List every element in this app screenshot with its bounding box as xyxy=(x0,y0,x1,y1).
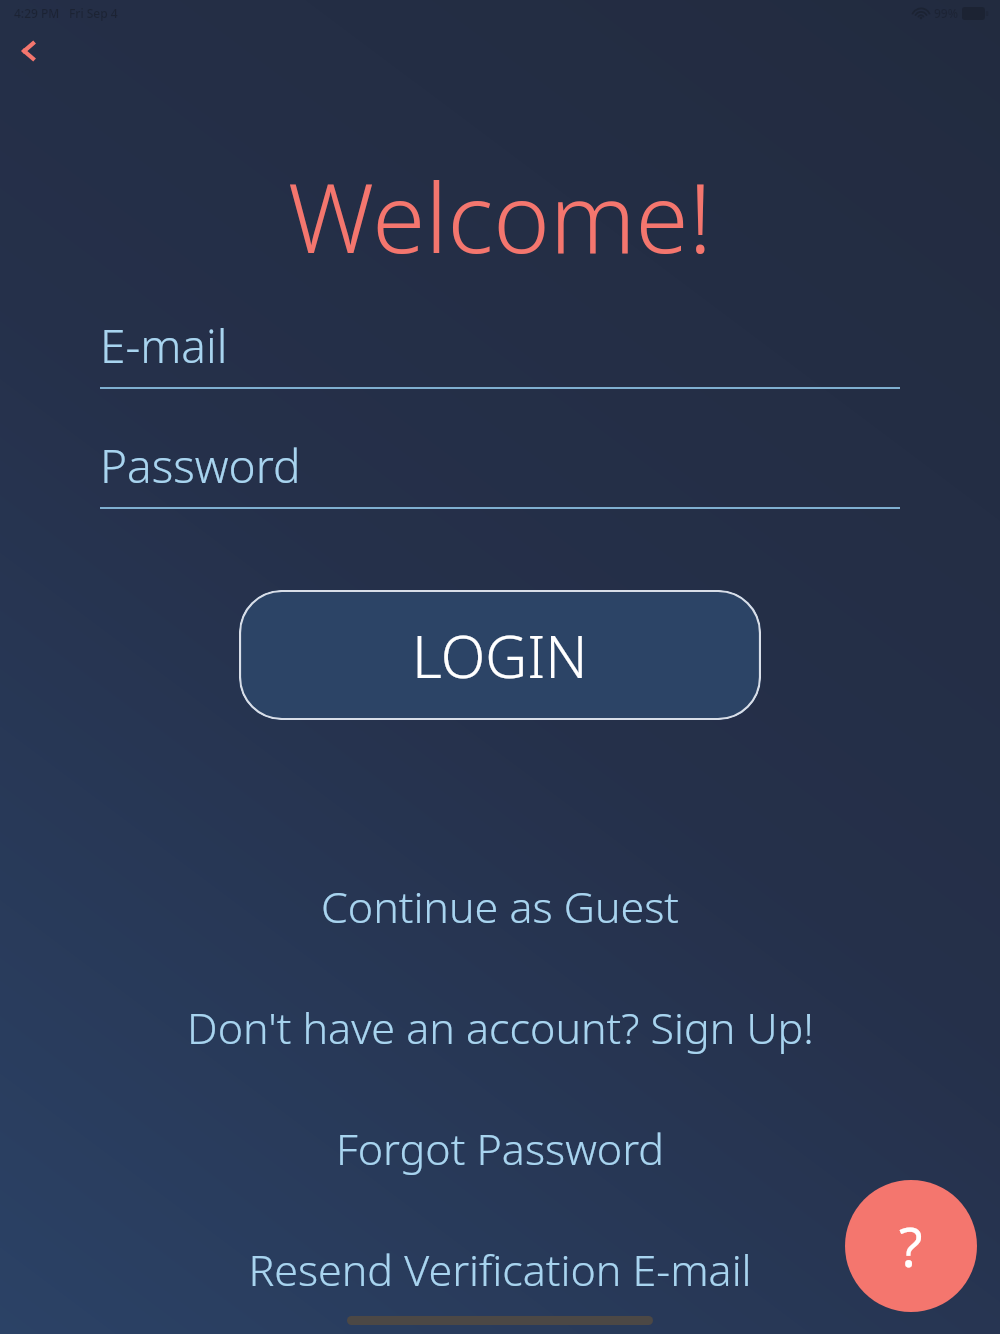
staticText: Fri Sep 4 xyxy=(69,5,118,21)
button[interactable]: Help xyxy=(845,1180,977,1312)
button[interactable]: Password xyxy=(100,434,900,509)
staticText: 4:29 PM xyxy=(14,5,60,21)
button[interactable]: Don't have an account? Sign Up! xyxy=(0,998,1000,1057)
staticText: E-mail xyxy=(100,314,228,377)
staticText: ? xyxy=(899,1209,923,1283)
button[interactable]: E-mail xyxy=(100,314,900,389)
button[interactable]: Resend Verification E-mail xyxy=(0,1240,1000,1299)
staticText: Password xyxy=(100,434,301,497)
staticText: Don't have an account? Sign Up! xyxy=(187,998,814,1057)
button[interactable]: Back xyxy=(8,30,50,72)
staticText: Welcome! xyxy=(0,150,1000,281)
staticText: LOGIN xyxy=(412,616,588,695)
staticText: Continue as Guest xyxy=(321,877,679,936)
button[interactable]: Forgot Password xyxy=(0,1119,1000,1178)
button[interactable]: LOGIN xyxy=(239,590,761,720)
button[interactable]: Continue as Guest xyxy=(0,877,1000,936)
staticText: 99% xyxy=(934,5,958,21)
staticText: Resend Verification E-mail xyxy=(248,1240,752,1299)
staticText: Forgot Password xyxy=(336,1119,664,1178)
